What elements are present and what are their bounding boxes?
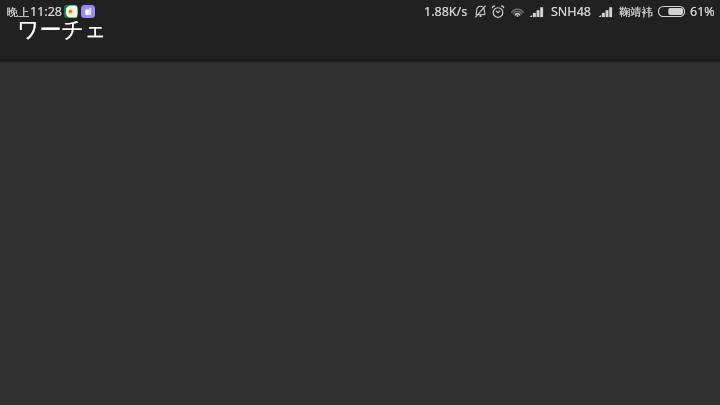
other: Notification [81, 5, 95, 18]
other: Notification [64, 5, 78, 18]
other: Silent mode [475, 5, 486, 18]
other: Alarm set [492, 5, 504, 18]
staticText: 61% [690, 3, 715, 20]
other: Battery 61 percent [658, 6, 685, 17]
staticText: 1.88K/s [424, 3, 468, 20]
staticText: ワーチェ [17, 16, 107, 44]
staticText: 晚上 [7, 5, 30, 19]
staticText: 11:28 [30, 3, 62, 20]
other: Wi-Fi signal [510, 5, 525, 18]
other: Mobile signal [598, 5, 613, 18]
staticText: SNH48 [551, 3, 591, 20]
staticText: 鞠靖袆 [619, 5, 653, 19]
other: Mobile signal [529, 5, 544, 18]
